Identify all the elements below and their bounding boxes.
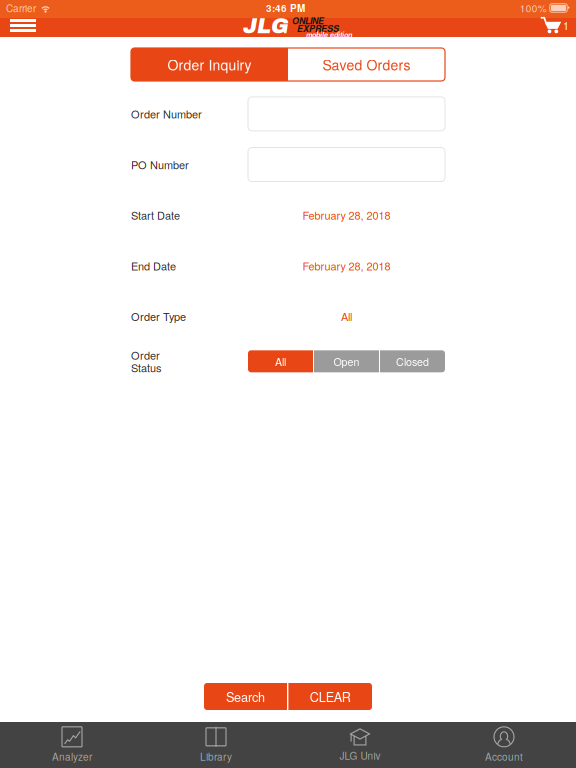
button[interactable]: Library [144, 722, 288, 768]
staticText: Analyzer [52, 749, 92, 764]
button[interactable]: Open [314, 350, 379, 372]
staticText: Order Number [131, 106, 202, 122]
staticText: JLG Univ [339, 748, 380, 763]
button[interactable]: Account [432, 722, 576, 768]
staticText: Order Type [131, 308, 186, 324]
staticText: 3:46 PM [266, 1, 305, 15]
staticText: Status [131, 360, 161, 375]
staticText: PO Number [131, 157, 189, 172]
staticText: Order [131, 347, 160, 363]
staticText: February 28, 2018 [302, 207, 390, 223]
staticText: Account [485, 749, 523, 764]
button[interactable]: JLG Univ [288, 722, 432, 768]
staticText: Saved Orders [322, 54, 410, 74]
staticText: 1 [563, 18, 569, 33]
button[interactable]: Saved Orders [288, 48, 445, 81]
staticText: JLG [243, 14, 289, 38]
staticText: Carrier [6, 1, 36, 15]
staticText: Start Date [131, 207, 180, 223]
staticText: mobile edition [306, 29, 352, 40]
button[interactable]: Analyzer [0, 722, 144, 768]
staticText: All [341, 308, 352, 324]
staticText: Order Inquiry [167, 54, 251, 74]
staticText: ONLINE [292, 14, 324, 27]
staticText: February 28, 2018 [302, 258, 390, 274]
staticText: Open [333, 354, 359, 369]
staticText: 100% [520, 1, 547, 15]
button[interactable]: All [248, 299, 445, 333]
button[interactable]: Shopping cart, 1 item [540, 14, 576, 37]
staticText: All [275, 354, 286, 369]
button[interactable]: February 28, 2018 [248, 249, 445, 283]
button[interactable]: Order Inquiry [131, 48, 288, 81]
staticText: End Date [131, 258, 176, 274]
staticText: Closed [396, 354, 429, 369]
button[interactable]: CLEAR [288, 683, 372, 710]
button[interactable]: Search [204, 683, 287, 710]
button[interactable]: February 28, 2018 [248, 198, 445, 232]
button[interactable]: Closed [380, 350, 445, 372]
button[interactable]: All [248, 350, 313, 372]
button[interactable]: Menu [0, 14, 46, 37]
staticText: EXPRESS [297, 22, 339, 35]
staticText: Search [226, 687, 265, 705]
staticText: CLEAR [310, 687, 351, 705]
staticText: Library [200, 749, 232, 764]
